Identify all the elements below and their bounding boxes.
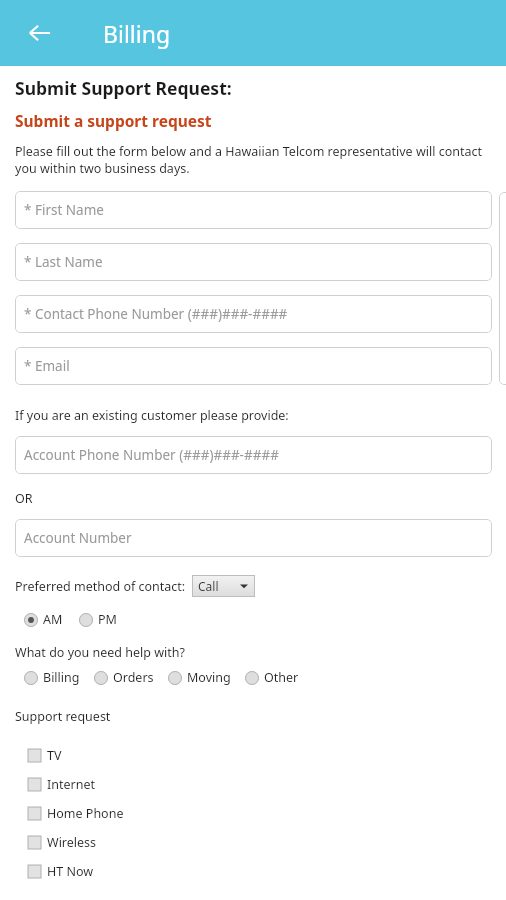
staticText: What do you need help with? [15, 644, 185, 661]
button[interactable]: * Email [15, 347, 492, 385]
staticText: Other [264, 669, 299, 686]
staticText: Submit Support Request: [15, 76, 232, 100]
button[interactable]: TV [28, 741, 506, 770]
button[interactable]: Orders [94, 669, 154, 686]
staticText: If you are an existing customer please p… [15, 407, 289, 424]
button[interactable]: Home Phone [28, 799, 506, 828]
button[interactable]: PM [79, 611, 117, 628]
staticText: OR [15, 490, 33, 507]
staticText: * Contact Phone Number (###)###-#### [24, 305, 288, 323]
button[interactable]: AM [24, 611, 63, 628]
button[interactable]: * Last Name [15, 243, 492, 281]
button[interactable]: Internet [28, 770, 506, 799]
button[interactable]: Account Number [15, 519, 492, 557]
staticText: TV [47, 747, 62, 764]
staticText: Submit a support request [15, 110, 212, 131]
button[interactable]: Call [192, 575, 255, 597]
staticText: Wireless [47, 834, 97, 851]
staticText: Home Phone [47, 805, 124, 822]
button[interactable]: Other [245, 669, 299, 686]
button[interactable]: Account Phone Number (###)###-#### [15, 436, 492, 474]
staticText: Billing [43, 669, 80, 686]
staticText: * Last Name [24, 253, 103, 271]
staticText: Preferred method of contact: [15, 578, 186, 595]
staticText: Account Number [24, 529, 132, 547]
staticText: * Email [24, 357, 70, 375]
staticText: Please fill out the form below and a Haw… [15, 143, 486, 177]
button[interactable]: HT Now [28, 857, 506, 886]
staticText: Moving [187, 669, 231, 686]
staticText: AM [43, 611, 63, 628]
staticText: HT Now [47, 863, 94, 880]
button[interactable]: Wireless [28, 828, 506, 857]
staticText: PM [98, 611, 117, 628]
staticText: Account Phone Number (###)###-#### [24, 446, 279, 464]
staticText: Billing [103, 18, 171, 49]
button[interactable]: * Contact Phone Number (###)###-#### [15, 295, 492, 333]
button[interactable]: Moving [168, 669, 231, 686]
button[interactable]: Billing [24, 669, 80, 686]
staticText: Support request [15, 708, 111, 725]
staticText: Orders [113, 669, 154, 686]
staticText: * First Name [24, 201, 104, 219]
staticText: Internet [47, 776, 95, 793]
staticText: Call [198, 578, 219, 594]
button[interactable]: * First Name [15, 191, 492, 229]
button[interactable]: Back [18, 11, 62, 55]
